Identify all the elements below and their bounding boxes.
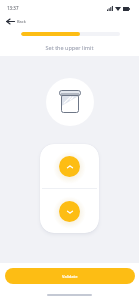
other: Back xyxy=(6,17,15,26)
button[interactable]: Increase xyxy=(40,144,99,188)
button[interactable]: Decrease xyxy=(56,198,83,225)
button[interactable]: Decrease xyxy=(40,189,99,233)
staticText: Set the upper limit xyxy=(0,44,139,51)
staticText: Back xyxy=(17,19,26,24)
button[interactable]: Increase xyxy=(56,153,83,180)
staticText: Validate xyxy=(62,274,78,279)
button[interactable]: Back xyxy=(0,15,26,28)
staticText: 13:37 xyxy=(7,5,19,11)
button[interactable]: Validate xyxy=(5,268,135,284)
